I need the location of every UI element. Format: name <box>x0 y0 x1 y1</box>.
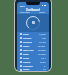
staticText: Dashboard <box>26 8 40 11</box>
staticText: 12,480 <box>39 33 46 36</box>
staticText: 9:41 <box>20 4 25 7</box>
staticText: 14 <box>43 68 46 71</box>
button[interactable]: Floors <box>17 68 49 71</box>
button[interactable]: Steps <box>17 32 49 36</box>
staticText: Steps <box>23 33 29 36</box>
staticText: Active <box>23 45 30 48</box>
button[interactable]: Distance <box>17 40 49 44</box>
staticText: 3 <box>44 65 46 68</box>
staticText: Calories <box>23 37 32 40</box>
button[interactable]: Calories <box>17 36 49 40</box>
staticText: Today <box>39 11 46 14</box>
button[interactable]: Water <box>17 56 49 60</box>
button[interactable]: Weight <box>17 60 49 64</box>
staticText: 58 min <box>38 45 46 48</box>
button[interactable]: Heart rate <box>17 48 49 52</box>
staticText: 85 <box>32 21 35 25</box>
button[interactable]: Workouts <box>17 64 49 68</box>
staticText: Heart rate <box>23 49 34 52</box>
staticText: Workouts <box>23 65 33 68</box>
staticText: 72 bpm <box>38 49 46 52</box>
staticText: Distance <box>23 41 32 44</box>
staticText: Overview <box>20 11 30 14</box>
staticText: Sleep <box>23 53 29 56</box>
button[interactable]: Active <box>17 44 49 48</box>
button[interactable]: Sleep <box>17 52 49 56</box>
staticText: 7.4 km <box>39 41 46 44</box>
staticText: Floors <box>23 68 30 71</box>
staticText: 642 <box>42 37 46 40</box>
staticText: 68 kg <box>40 61 46 64</box>
staticText: 7h 20m <box>38 53 46 56</box>
staticText: 1.8 L <box>41 57 46 60</box>
staticText: Weight <box>23 61 31 64</box>
staticText: Water <box>23 57 30 60</box>
